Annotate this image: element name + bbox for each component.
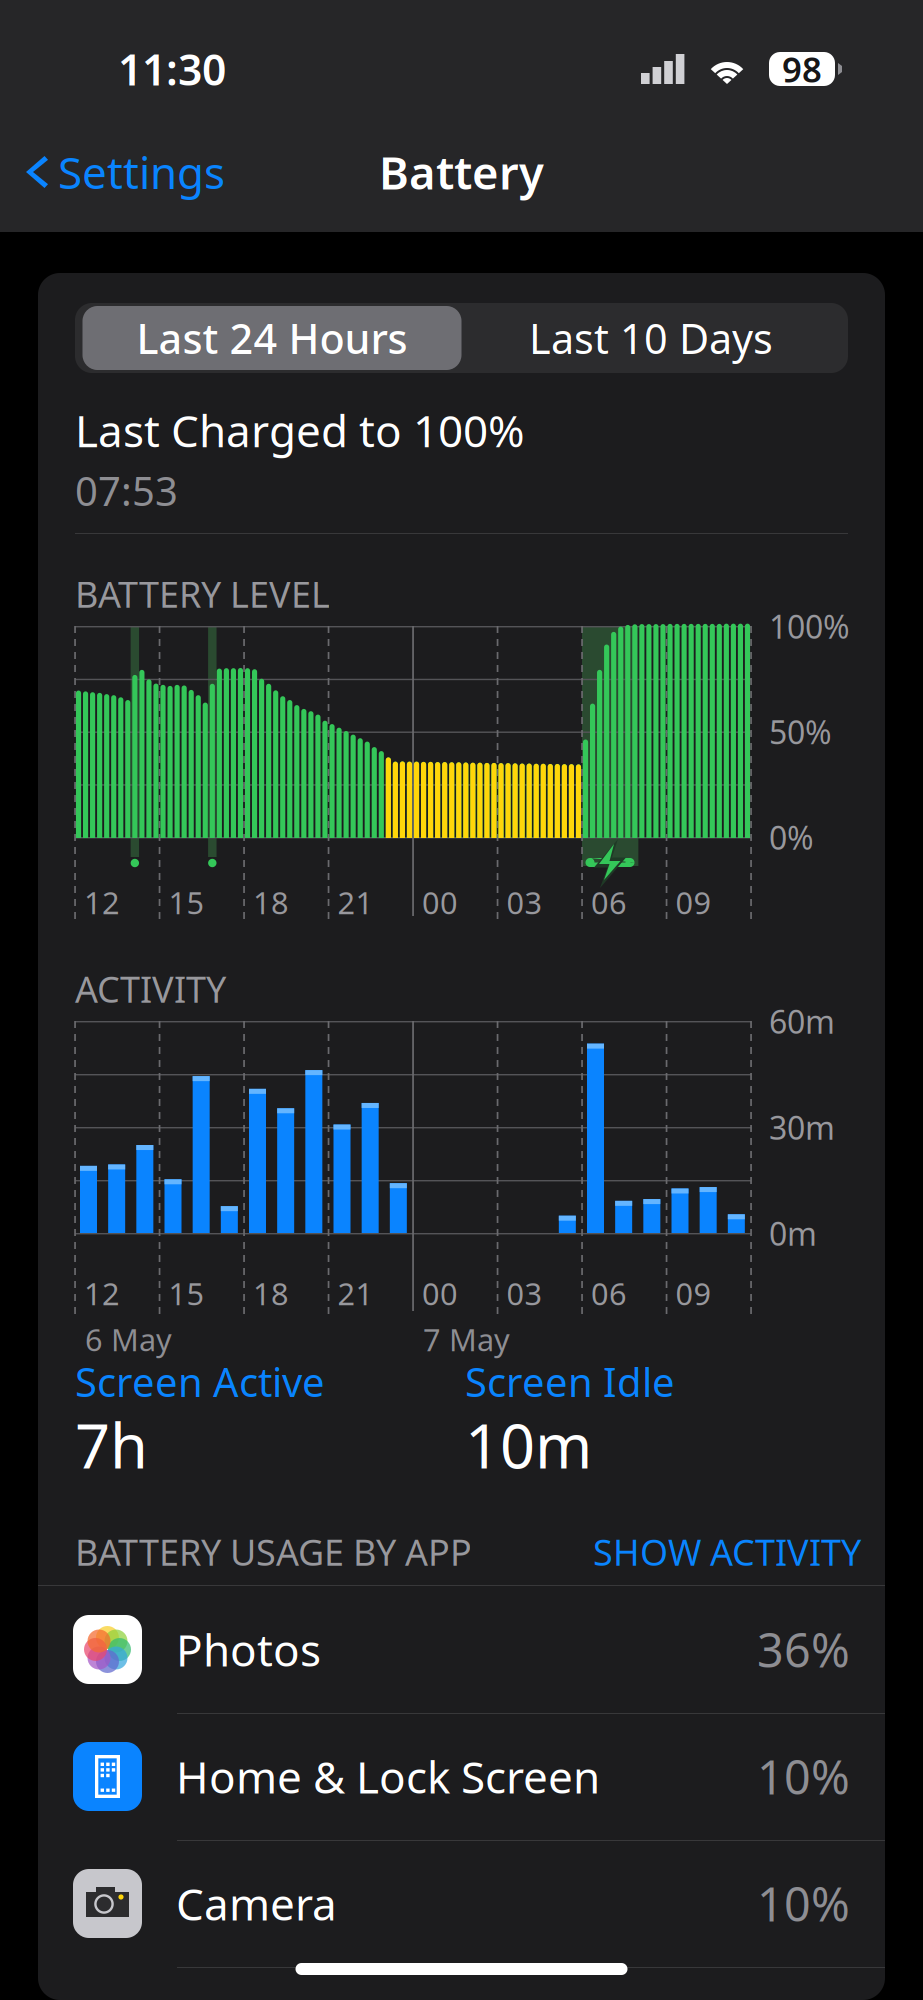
staticText: 30m bbox=[769, 1106, 835, 1148]
staticText: 12 bbox=[84, 1273, 120, 1314]
staticText: 18 bbox=[253, 1273, 289, 1314]
staticText: 07:53 bbox=[75, 464, 178, 517]
staticText: Screen Idle bbox=[465, 1355, 675, 1408]
staticText: SHOW ACTIVITY bbox=[593, 1528, 861, 1576]
staticText: 100% bbox=[769, 605, 850, 647]
staticText: Photos bbox=[176, 1620, 321, 1679]
staticText: 36% bbox=[757, 1618, 850, 1680]
staticText: 21 bbox=[337, 1273, 373, 1314]
staticText: 50% bbox=[769, 710, 832, 753]
staticText: Settings bbox=[58, 143, 225, 201]
staticText: Last 10 Days bbox=[529, 311, 773, 365]
staticText: BATTERY USAGE BY APP bbox=[75, 1528, 472, 1576]
staticText: 10% bbox=[757, 1745, 850, 1807]
staticText: 60m bbox=[769, 1000, 835, 1042]
button[interactable]: Last 10 Days bbox=[461, 306, 840, 370]
staticText: 0m bbox=[769, 1212, 817, 1254]
staticText: 09 bbox=[675, 1273, 711, 1314]
button[interactable]: Home & Lock Screen bbox=[38, 1713, 885, 1840]
staticText: 18 bbox=[253, 882, 289, 923]
staticText: Battery bbox=[379, 142, 544, 202]
button[interactable]: Photos bbox=[38, 1586, 885, 1713]
staticText: 98 bbox=[782, 46, 822, 92]
staticText: 11:30 bbox=[118, 41, 226, 97]
staticText: Last Charged to 100% bbox=[75, 401, 525, 459]
staticText: 06 bbox=[591, 882, 627, 923]
button[interactable]: Last 24 Hours bbox=[82, 306, 461, 370]
button[interactable]: Settings bbox=[0, 127, 225, 217]
staticText: 00 bbox=[422, 882, 458, 923]
staticText: 7h bbox=[75, 1404, 148, 1485]
staticText: 12 bbox=[84, 882, 120, 923]
staticText: 0% bbox=[769, 816, 814, 858]
staticText: Camera bbox=[176, 1874, 337, 1933]
staticText: Screen Active bbox=[75, 1355, 325, 1408]
staticText: Home & Lock Screen bbox=[176, 1747, 600, 1806]
staticText: 6 May bbox=[85, 1319, 172, 1360]
staticText: 7 May bbox=[423, 1319, 510, 1360]
button[interactable]: Camera bbox=[38, 1840, 885, 1967]
staticText: 09 bbox=[675, 882, 711, 923]
button[interactable]: SHOW ACTIVITY bbox=[593, 1528, 861, 1576]
staticText: 21 bbox=[337, 882, 373, 923]
staticText: 15 bbox=[168, 1273, 204, 1314]
staticText: 15 bbox=[168, 882, 204, 923]
staticText: 03 bbox=[506, 1273, 542, 1314]
staticText: ACTIVITY bbox=[75, 965, 226, 1013]
staticText: 03 bbox=[506, 882, 542, 923]
staticText: 06 bbox=[591, 1273, 627, 1314]
staticText: Last 24 Hours bbox=[136, 311, 407, 365]
staticText: 00 bbox=[422, 1273, 458, 1314]
staticText: BATTERY LEVEL bbox=[75, 570, 330, 618]
staticText: 10% bbox=[757, 1872, 850, 1934]
staticText: 10m bbox=[465, 1404, 592, 1485]
